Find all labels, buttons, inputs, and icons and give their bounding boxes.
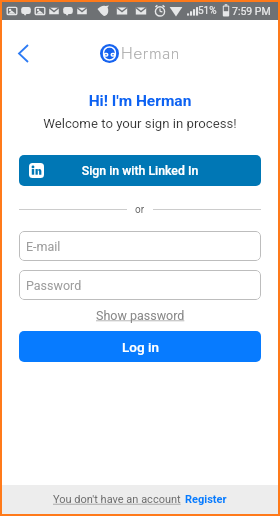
staticText: Hi! I'm Herman — [19, 92, 261, 110]
staticText: or — [135, 204, 145, 216]
button[interactable]: Back — [8, 38, 38, 68]
staticText: Password — [26, 278, 82, 293]
button[interactable]: Show password — [96, 308, 185, 323]
button[interactable]: Log in — [19, 331, 261, 362]
staticText: 51% — [198, 5, 217, 17]
button[interactable]: Password — [19, 270, 261, 300]
staticText: Sign in with Linked In — [44, 164, 236, 178]
staticText: Herman — [121, 41, 181, 66]
staticText: E-mail — [26, 239, 61, 254]
staticText: Welcome to your sign in process! — [19, 116, 261, 131]
button[interactable]: E-mail — [19, 231, 261, 261]
button[interactable]: Register — [185, 493, 227, 506]
button[interactable]: You don't have an account — [53, 493, 181, 506]
staticText: Log in — [122, 339, 159, 355]
button[interactable]: Sign in with Linked In — [19, 155, 261, 186]
staticText: 7:59 PM — [232, 5, 271, 17]
